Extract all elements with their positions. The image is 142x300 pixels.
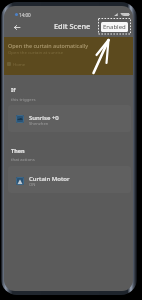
staticText: If	[11, 86, 16, 93]
staticText: Then	[11, 147, 25, 154]
button[interactable]: Curtain Motor	[8, 166, 131, 193]
staticText: 14:00	[19, 12, 31, 18]
staticText: that actions	[11, 156, 35, 162]
staticText: ON	[29, 182, 36, 188]
button[interactable]: Enabled	[101, 22, 128, 32]
staticText: Open the curtain automatically	[8, 42, 89, 49]
staticText: Shenzhen	[29, 121, 49, 127]
staticText: Home	[13, 61, 26, 67]
button[interactable]: Sunrise +0	[8, 105, 131, 132]
staticText: Enabled	[103, 23, 126, 31]
staticText: Open the curtain at sunrise	[8, 49, 64, 55]
staticText: Curtain Motor	[29, 175, 70, 183]
staticText: Sunrise +0	[29, 114, 59, 122]
staticText: this triggers	[11, 96, 36, 102]
staticText: Edit Scene	[54, 21, 91, 31]
button[interactable]: Back	[11, 21, 23, 33]
